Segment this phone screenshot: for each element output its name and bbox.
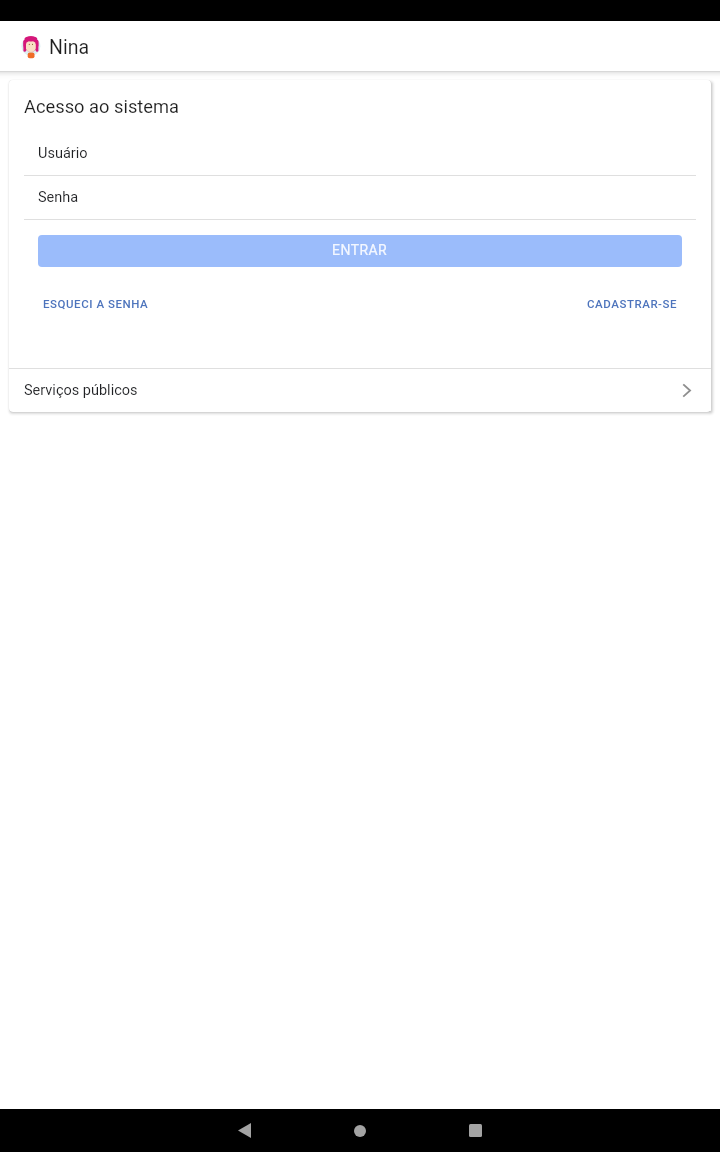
- button[interactable]: Recent apps: [451, 1109, 499, 1152]
- staticText: Usuário: [38, 145, 88, 162]
- button[interactable]: Serviços públicos: [9, 369, 711, 412]
- button[interactable]: CADASTRAR-SE: [577, 295, 687, 312]
- staticText: Serviços públicos: [24, 382, 138, 399]
- staticText: ENTRAR: [332, 242, 388, 258]
- button[interactable]: Home: [336, 1109, 384, 1152]
- staticText: Acesso ao sistema: [24, 96, 180, 117]
- staticText: ESQUECI A SENHA: [43, 297, 149, 310]
- button[interactable]: ENTRAR: [38, 235, 682, 267]
- button[interactable]: ESQUECI A SENHA: [33, 295, 159, 312]
- button[interactable]: Nina: [0, 21, 720, 72]
- staticText: Senha: [38, 189, 79, 206]
- staticText: CADASTRAR-SE: [587, 297, 677, 310]
- button[interactable]: Senha: [9, 176, 711, 219]
- staticText: Nina: [49, 36, 90, 59]
- button[interactable]: Usuário: [9, 132, 711, 175]
- button[interactable]: Back: [220, 1109, 268, 1152]
